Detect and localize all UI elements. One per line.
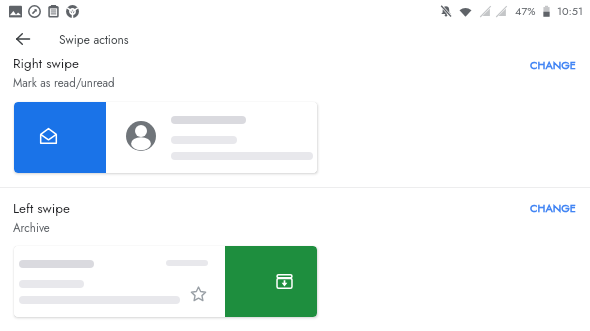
button[interactable] xyxy=(14,102,317,173)
staticText: 10:51 xyxy=(557,3,584,19)
staticText: Right swipe xyxy=(13,54,79,74)
button[interactable]: CHANGE xyxy=(522,196,584,220)
staticText: Archive xyxy=(13,220,50,237)
button[interactable]: CHANGE xyxy=(522,53,584,77)
staticText: Swipe actions xyxy=(59,31,129,48)
staticText: Mark as read/unread xyxy=(13,75,115,92)
button[interactable] xyxy=(14,246,317,317)
staticText: CHANGE xyxy=(530,57,576,73)
staticText: Left swipe xyxy=(13,199,70,219)
staticText: CHANGE xyxy=(530,200,576,216)
staticText: 47% xyxy=(515,3,536,19)
button[interactable]: Back xyxy=(11,27,35,51)
